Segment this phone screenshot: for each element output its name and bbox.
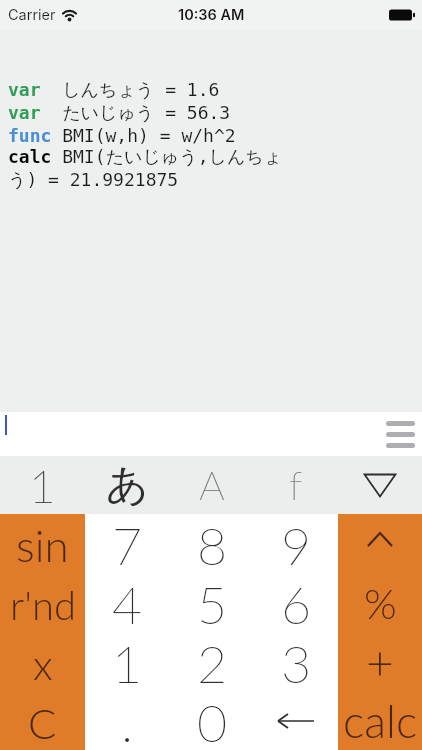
button[interactable]: あ — [85, 456, 170, 514]
button[interactable]: C — [0, 691, 85, 750]
button[interactable]: 0 — [170, 691, 254, 750]
button[interactable]: + — [338, 632, 422, 691]
button[interactable]: 6 — [254, 573, 338, 632]
button[interactable]: f — [254, 456, 338, 514]
button[interactable]: . — [85, 691, 170, 750]
staticText: var しんちょう = 1.6 — [8, 79, 220, 102]
staticText: 10:36 AM — [178, 6, 245, 24]
staticText: 0 — [197, 691, 228, 750]
staticText: う) = 21.9921875 — [8, 169, 179, 192]
staticText: 5 — [197, 573, 228, 632]
staticText: + — [366, 633, 394, 691]
staticText: 6 — [281, 573, 312, 632]
button[interactable] — [338, 456, 422, 514]
button[interactable]: 1 — [0, 456, 85, 514]
button[interactable]: 8 — [170, 514, 254, 573]
staticText: 7 — [112, 514, 143, 573]
staticText: sin — [16, 519, 69, 572]
button[interactable]: calc — [338, 691, 422, 750]
staticText: . — [121, 691, 134, 750]
staticText: 4 — [112, 573, 143, 632]
button[interactable]: 5 — [170, 573, 254, 632]
staticText: 1 — [112, 632, 143, 691]
button[interactable]: r'nd — [0, 573, 85, 632]
staticText: A — [199, 461, 225, 509]
button[interactable]: 7 — [85, 514, 170, 573]
button[interactable] — [386, 421, 415, 448]
staticText: 9 — [281, 514, 312, 573]
staticText: 8 — [197, 514, 228, 573]
staticText: calc — [343, 694, 418, 748]
button[interactable]: 2 — [170, 632, 254, 691]
staticText: 2 — [197, 632, 228, 691]
staticText: あ — [106, 459, 149, 512]
staticText: Carrier — [8, 6, 56, 24]
staticText: 1 — [29, 458, 56, 513]
staticText: % — [364, 578, 397, 628]
staticText: r'nd — [10, 581, 76, 629]
button[interactable]: 3 — [254, 632, 338, 691]
button[interactable]: sin — [0, 514, 85, 573]
button[interactable]: 4 — [85, 573, 170, 632]
button[interactable]: A — [170, 456, 254, 514]
button[interactable]: x — [0, 632, 85, 691]
button[interactable]: 9 — [254, 514, 338, 573]
button[interactable]: % — [338, 573, 422, 632]
button[interactable]: 1 — [85, 632, 170, 691]
staticText: f — [289, 461, 303, 509]
staticText: func BMI(w,h) = w/h^2 — [8, 125, 236, 146]
staticText: var たいじゅう = 56.3 — [8, 102, 231, 125]
button[interactable] — [0, 412, 422, 456]
button[interactable] — [338, 514, 422, 573]
staticText: C — [28, 698, 57, 748]
staticText: calc BMI(たいじゅう,しんちょ — [8, 146, 283, 169]
staticText: 3 — [281, 632, 312, 691]
staticText: x — [33, 639, 53, 689]
button[interactable] — [254, 691, 338, 750]
